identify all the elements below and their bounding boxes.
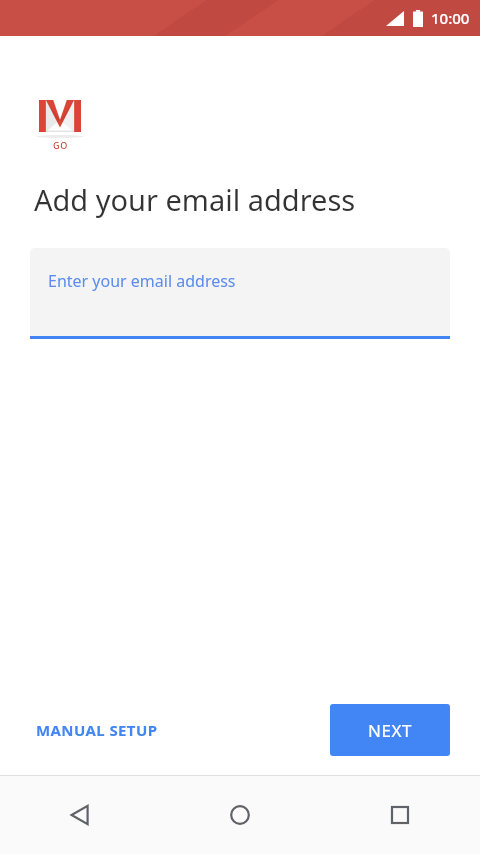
button[interactable]: NEXT: [330, 704, 450, 756]
staticText: NEXT: [368, 719, 412, 742]
staticText: GO: [53, 139, 68, 151]
staticText: MANUAL SETUP: [36, 720, 158, 740]
button[interactable]: MANUAL SETUP: [22, 708, 172, 752]
button[interactable]: Enter your email address: [30, 248, 450, 339]
staticText: 10:00: [431, 8, 470, 28]
button[interactable]: Back: [0, 776, 160, 854]
button[interactable]: Recent apps: [320, 776, 480, 854]
staticText: Enter your email address: [48, 270, 236, 292]
button[interactable]: Home: [160, 776, 320, 854]
staticText: Add your email address: [34, 180, 356, 219]
